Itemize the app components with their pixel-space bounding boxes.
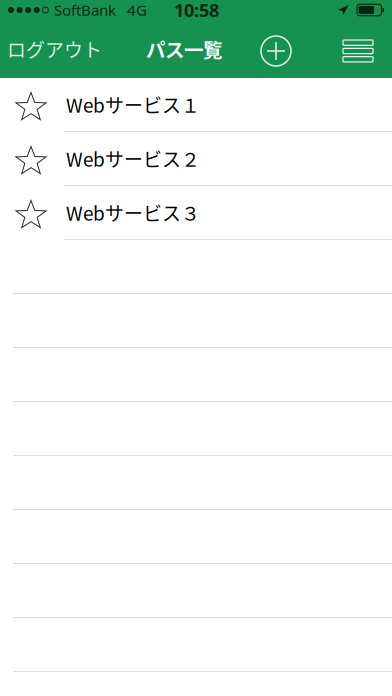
staticText: Webサービス３ bbox=[66, 199, 200, 226]
staticText: Webサービス１ bbox=[66, 91, 200, 118]
button[interactable]: Webサービス２ bbox=[0, 132, 392, 186]
button[interactable]: Webサービス１ bbox=[0, 78, 392, 132]
staticText: 10:58 bbox=[174, 0, 219, 22]
button[interactable]: Webサービス３ bbox=[0, 186, 392, 240]
staticText: ログアウト bbox=[7, 35, 102, 63]
button[interactable]: Add bbox=[261, 22, 291, 80]
button[interactable]: ログアウト bbox=[0, 20, 112, 78]
button[interactable]: Menu bbox=[343, 22, 373, 80]
staticText: 4G bbox=[127, 0, 147, 20]
staticText: Webサービス２ bbox=[66, 145, 200, 172]
staticText: パス一覧 bbox=[146, 35, 222, 63]
staticText: SoftBank bbox=[54, 0, 116, 20]
button[interactable]: パス一覧 bbox=[146, 20, 222, 78]
